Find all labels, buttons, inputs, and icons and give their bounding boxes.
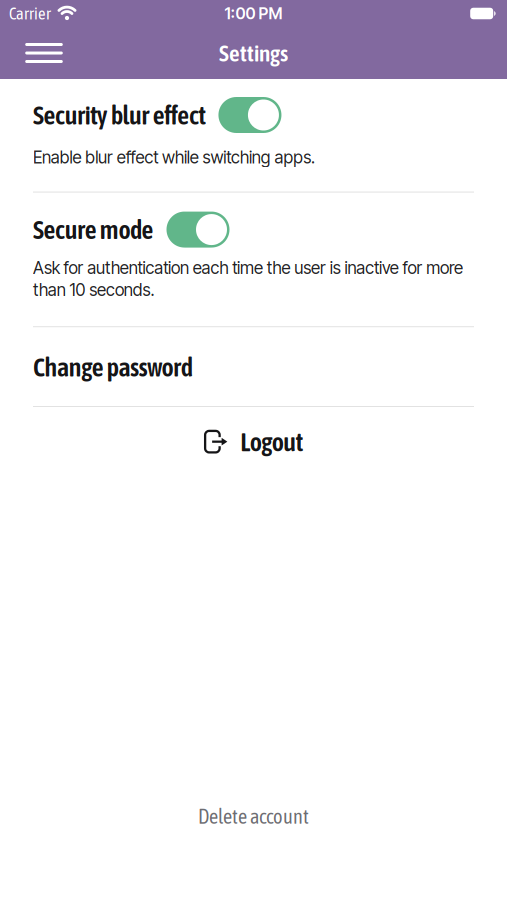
button[interactable]: Delete account: [198, 805, 309, 828]
staticText: Ask for authentication each time the use…: [33, 258, 463, 300]
staticText: Change password: [33, 352, 193, 382]
staticText: Enable blur effect while switching apps.: [33, 147, 315, 168]
button[interactable]: Secure mode: [166, 212, 229, 248]
staticText: 1:00 PM: [224, 4, 282, 23]
button[interactable]: Logout: [204, 427, 303, 457]
staticText: Security blur effect: [33, 100, 205, 130]
button[interactable]: Change password: [33, 352, 474, 382]
staticText: Settings: [219, 40, 288, 66]
button[interactable]: Security blur effect: [218, 97, 281, 133]
staticText: Logout: [240, 427, 303, 457]
button[interactable]: Menu: [0, 35, 75, 71]
staticText: Secure mode: [33, 215, 153, 244]
staticText: Carrier: [9, 4, 51, 23]
staticText: Delete account: [198, 805, 309, 828]
